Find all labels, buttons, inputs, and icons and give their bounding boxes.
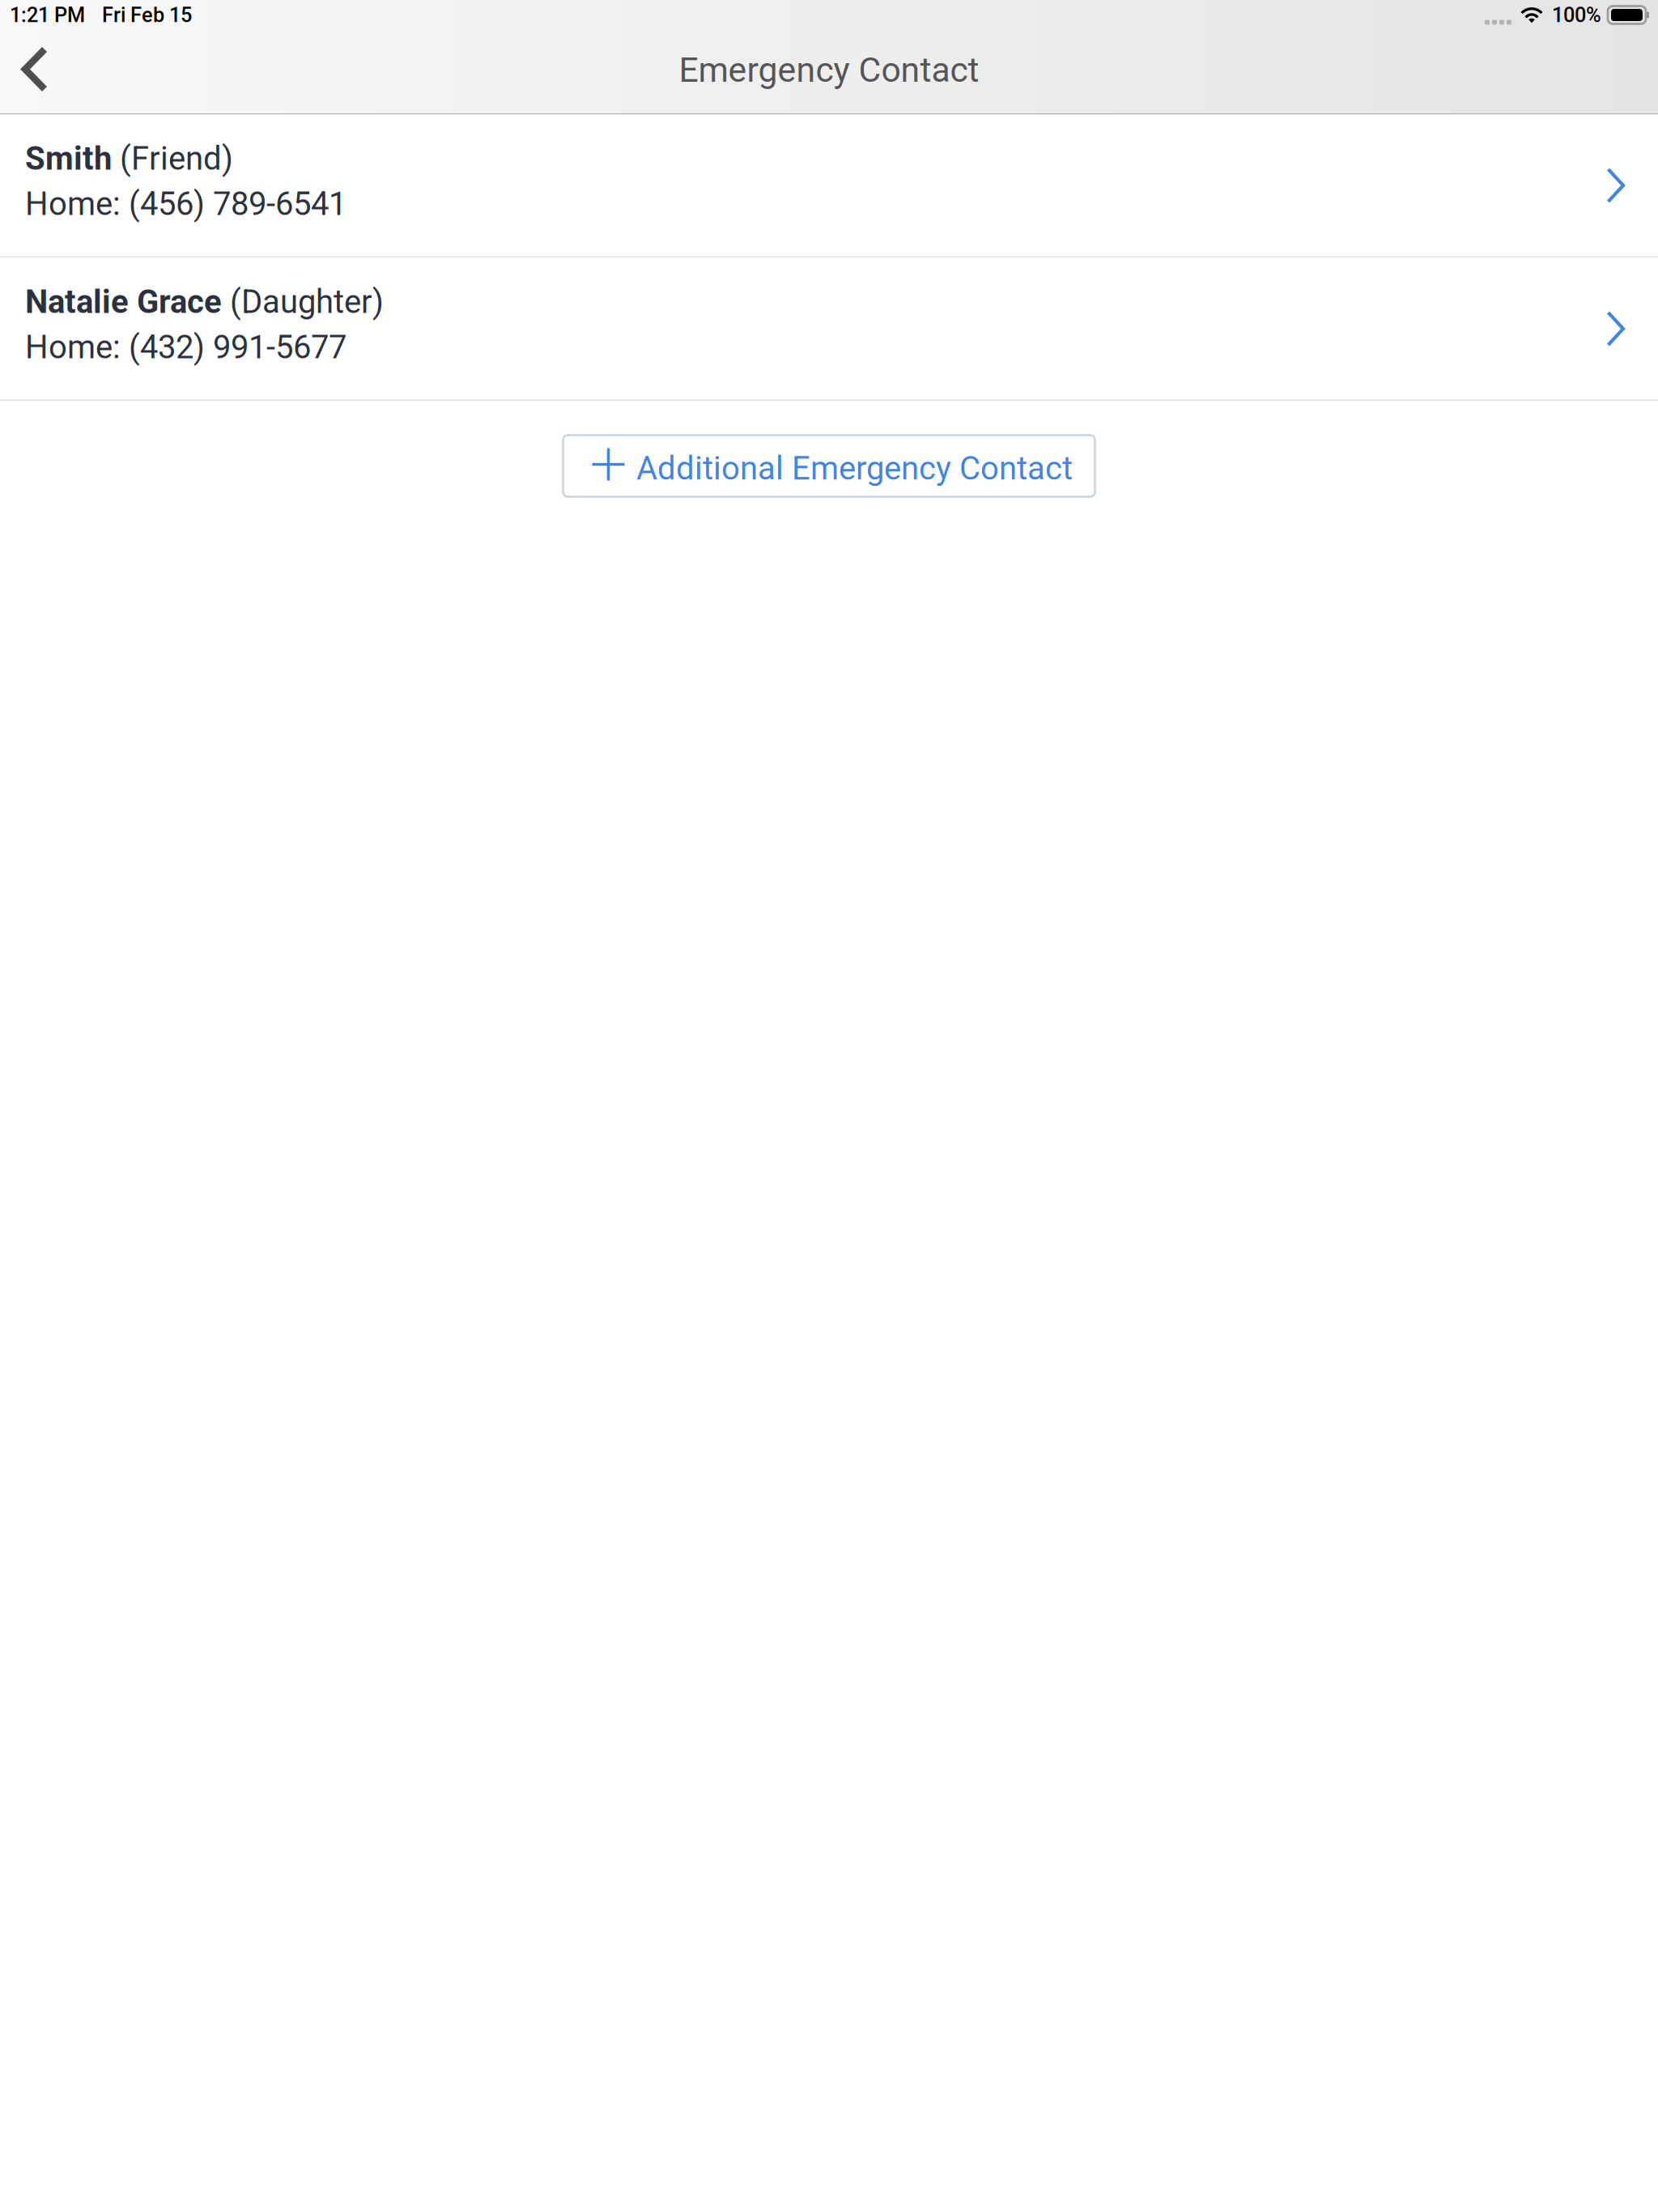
staticText: (Daughter) xyxy=(222,283,384,321)
button[interactable]: Additional Emergency Contact xyxy=(563,435,1095,497)
staticText: Home: (456) 789-6541 xyxy=(25,185,346,223)
staticText: Natalie Grace xyxy=(25,283,222,321)
staticText: Smith xyxy=(25,140,112,178)
staticText: Home: (432) 991-5677 xyxy=(25,328,346,366)
staticText: 1:21 PM xyxy=(10,3,85,27)
staticText: (Friend) xyxy=(112,140,233,178)
staticText: Emergency Contact xyxy=(679,50,979,90)
button[interactable]: Natalie Grace xyxy=(0,258,1658,400)
staticText: Additional Emergency Contact xyxy=(636,449,1073,487)
staticText: 100% xyxy=(1552,3,1601,27)
button[interactable]: Smith xyxy=(0,115,1658,256)
staticText: Fri Feb 15 xyxy=(102,3,192,27)
button[interactable]: Back xyxy=(0,28,89,112)
